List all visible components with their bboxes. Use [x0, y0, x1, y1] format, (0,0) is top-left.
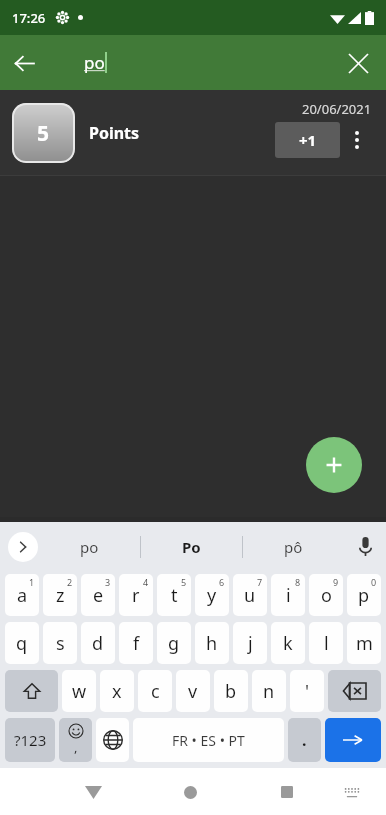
staticText: po	[84, 51, 105, 74]
button[interactable]: i	[271, 574, 305, 616]
button[interactable]: o	[309, 574, 343, 616]
staticText: n	[263, 679, 275, 704]
button[interactable]: Home	[167, 769, 213, 815]
button[interactable]: .	[288, 718, 321, 762]
button[interactable]: p	[347, 574, 381, 616]
staticText: ?123	[14, 730, 47, 750]
button[interactable]: r	[119, 574, 153, 616]
button[interactable]: Hide keyboard	[332, 772, 372, 812]
button[interactable]: y	[195, 574, 229, 616]
staticText: 5	[37, 119, 50, 148]
staticText: f	[133, 631, 140, 656]
staticText: t	[171, 583, 178, 608]
button[interactable]: h	[195, 622, 229, 664]
staticText: 20/06/2021	[302, 100, 372, 118]
staticText: p	[358, 583, 370, 608]
staticText: a	[17, 583, 28, 608]
staticText: .	[302, 729, 307, 751]
button[interactable]: g	[157, 622, 191, 664]
button[interactable]: a	[5, 574, 39, 616]
button[interactable]: Shift	[5, 670, 58, 712]
button[interactable]: More options	[340, 120, 374, 160]
staticText: 7	[257, 576, 263, 588]
staticText: q	[16, 631, 28, 656]
staticText: x	[112, 679, 122, 704]
staticText: po	[80, 537, 99, 557]
staticText: v	[188, 679, 198, 704]
button[interactable]: k	[271, 622, 305, 664]
staticText: g	[168, 631, 180, 656]
button[interactable]: v	[176, 670, 210, 712]
button[interactable]: Enter	[325, 718, 381, 762]
staticText: ,	[74, 738, 78, 756]
staticText: k	[283, 631, 293, 656]
staticText: l	[324, 631, 329, 656]
staticText: i	[286, 583, 291, 608]
button[interactable]: Clear	[334, 39, 382, 87]
staticText: 5	[181, 576, 187, 588]
button[interactable]: More suggestions	[8, 532, 38, 562]
button[interactable]: m	[347, 622, 381, 664]
button[interactable]: Back	[70, 769, 116, 815]
button[interactable]: Emoji	[59, 718, 92, 762]
button[interactable]: z	[43, 574, 77, 616]
button[interactable]: pô	[243, 522, 344, 571]
staticText: b	[225, 679, 237, 704]
staticText: 2	[67, 576, 73, 588]
button[interactable]: Back	[0, 39, 48, 87]
staticText: 17:26	[12, 9, 46, 27]
staticText: 3	[105, 576, 111, 588]
staticText: s	[56, 631, 65, 656]
button[interactable]: Voice input	[344, 522, 386, 571]
staticText: 4	[143, 576, 149, 588]
button[interactable]: Add	[306, 437, 362, 493]
staticText: m	[356, 631, 373, 656]
staticText: r	[132, 583, 140, 608]
button[interactable]: j	[233, 622, 267, 664]
button[interactable]: Recents	[264, 769, 310, 815]
staticText: 8	[295, 576, 301, 588]
button[interactable]: FR • ES • PT	[133, 718, 284, 762]
staticText: z	[56, 583, 65, 608]
button[interactable]: '	[290, 670, 324, 712]
staticText: c	[151, 679, 160, 704]
button[interactable]: +1	[275, 122, 340, 158]
button[interactable]: t	[157, 574, 191, 616]
staticText: d	[92, 631, 104, 656]
staticText: e	[93, 583, 104, 608]
staticText: FR • ES • PT	[172, 731, 245, 750]
button[interactable]: f	[119, 622, 153, 664]
button[interactable]: u	[233, 574, 267, 616]
staticText: y	[207, 583, 217, 608]
staticText: Points	[89, 122, 140, 144]
staticText: u	[244, 583, 256, 608]
button[interactable]: c	[138, 670, 172, 712]
button[interactable]: w	[62, 670, 96, 712]
button[interactable]: ?123	[5, 718, 55, 762]
staticText: 9	[333, 576, 339, 588]
button[interactable]: d	[81, 622, 115, 664]
staticText: 1	[29, 576, 35, 588]
staticText: '	[305, 679, 310, 704]
button[interactable]: Change language	[96, 718, 129, 762]
staticText: pô	[284, 537, 303, 557]
button[interactable]: s	[43, 622, 77, 664]
button[interactable]: q	[5, 622, 39, 664]
button[interactable]: x	[100, 670, 134, 712]
button[interactable]: l	[309, 622, 343, 664]
button[interactable]: e	[81, 574, 115, 616]
staticText: +1	[299, 130, 317, 150]
staticText: j	[248, 631, 253, 656]
staticText: 0	[371, 576, 377, 588]
staticText: 6	[219, 576, 225, 588]
button[interactable]: b	[214, 670, 248, 712]
staticText: w	[72, 679, 87, 704]
button[interactable]: Po	[141, 522, 242, 571]
button[interactable]: 20/06/2021	[0, 90, 386, 175]
button[interactable]: po	[38, 522, 140, 571]
staticText: h	[206, 631, 218, 656]
button[interactable]: Backspace	[328, 670, 381, 712]
staticText: o	[321, 583, 332, 608]
button[interactable]: n	[252, 670, 286, 712]
staticText: Po	[182, 537, 201, 557]
